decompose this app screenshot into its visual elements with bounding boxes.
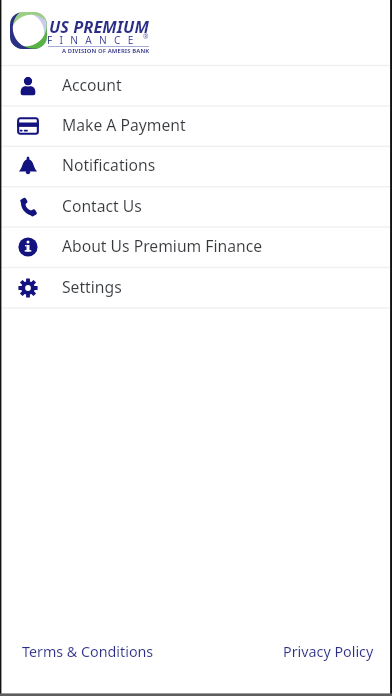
staticText: Contact Us [62, 195, 142, 216]
button[interactable]: About Us Premium Finance [0, 227, 392, 267]
staticText: A DIVISION OF AMERIS BANK [62, 47, 150, 55]
button[interactable]: Notifications [0, 146, 392, 186]
button[interactable]: Settings [0, 268, 392, 308]
staticText: Account [62, 74, 122, 95]
staticText: F I N A N C E [47, 33, 136, 47]
staticText: Privacy Policy [283, 642, 374, 661]
other: Make A Payment [18, 116, 38, 136]
button[interactable]: Terms & Conditions [13, 637, 163, 666]
staticText: Notifications [62, 154, 156, 175]
other: Notifications [18, 156, 38, 176]
staticText: Terms & Conditions [22, 642, 154, 661]
other: About Us Premium Finance [18, 237, 38, 257]
staticText: Settings [62, 276, 122, 297]
staticText: Make A Payment [62, 114, 186, 135]
staticText: ® [143, 32, 149, 41]
other: Account [18, 76, 38, 96]
button[interactable]: Account [0, 66, 392, 106]
button[interactable]: Make A Payment [0, 106, 392, 146]
staticText: About Us Premium Finance [62, 235, 263, 256]
other: Settings [18, 278, 38, 298]
button[interactable]: Contact Us [0, 187, 392, 227]
staticText: US PREMIUM [49, 15, 149, 37]
button[interactable]: Privacy Policy [274, 637, 383, 666]
other: Contact Us [18, 197, 38, 217]
